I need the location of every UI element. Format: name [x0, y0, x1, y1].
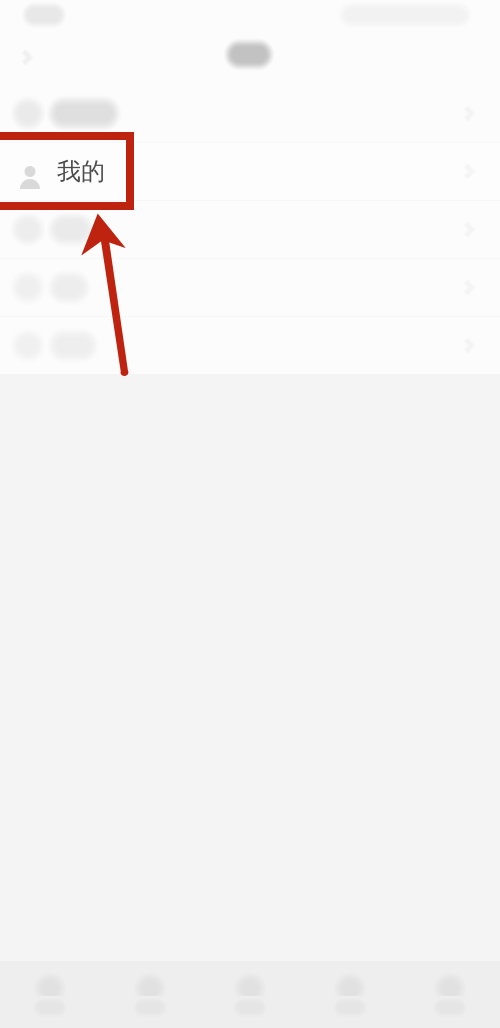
button[interactable]	[0, 259, 500, 316]
button[interactable]: Tab	[0, 961, 100, 1028]
button[interactable]: Tab	[300, 961, 400, 1028]
button[interactable]	[0, 85, 500, 142]
button[interactable]: 我的	[0, 143, 500, 200]
staticText: 我的	[57, 157, 105, 186]
button[interactable]: Tab	[200, 961, 300, 1028]
button[interactable]: Tab	[100, 961, 200, 1028]
button[interactable]: Tab	[400, 961, 500, 1028]
button[interactable]	[0, 201, 500, 258]
button[interactable]	[0, 317, 500, 374]
